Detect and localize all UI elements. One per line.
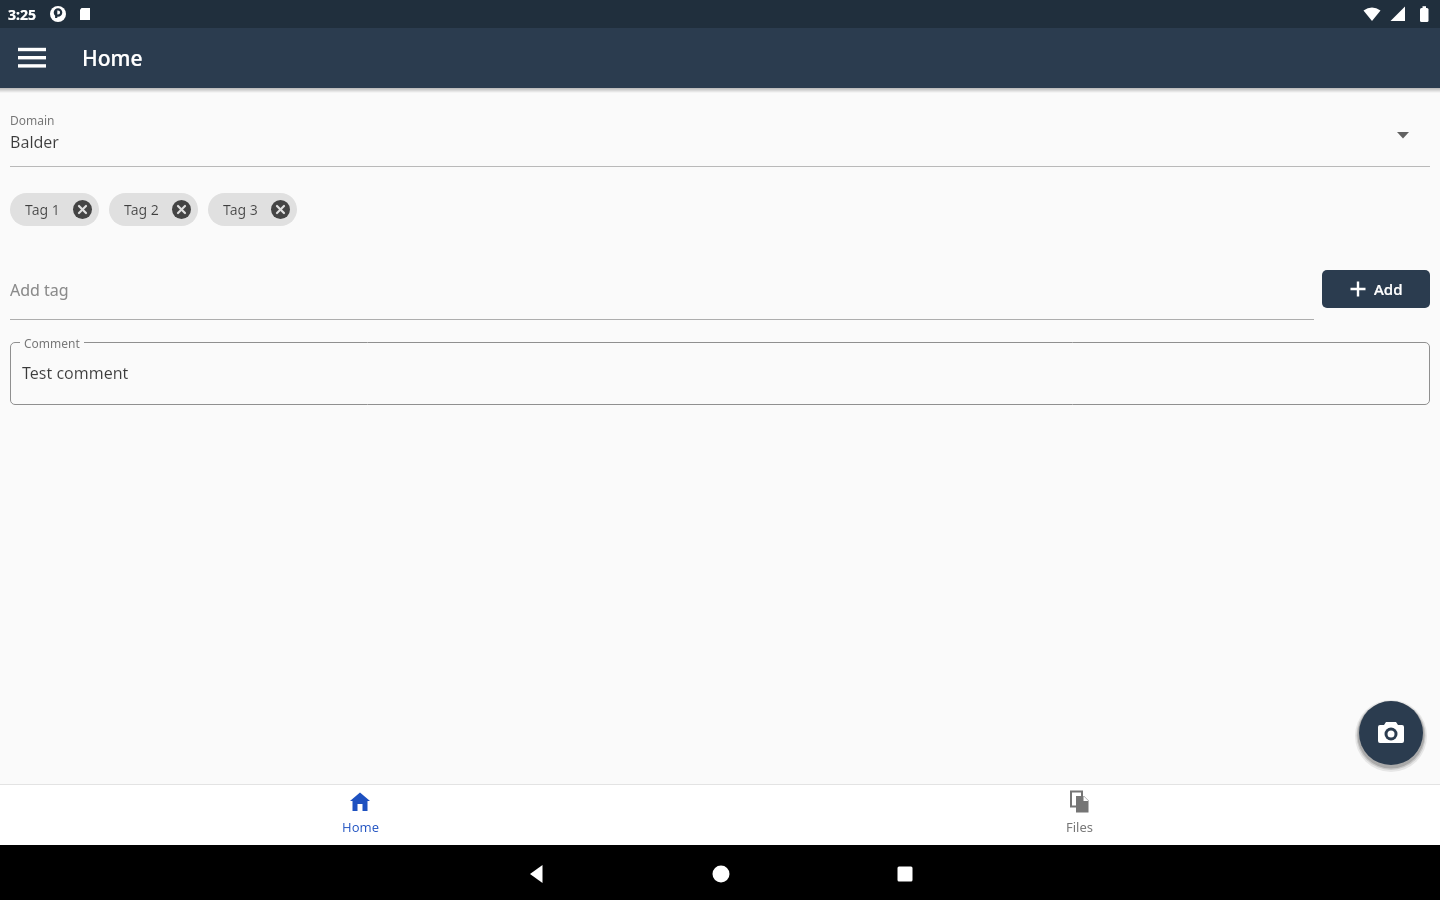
staticText: Domain [10, 112, 55, 128]
staticText: Tag 2 [124, 200, 159, 219]
button[interactable]: Tag 2 [109, 193, 198, 226]
staticText: Test comment [22, 362, 129, 384]
button[interactable]: Balder [0, 128, 1440, 168]
staticText: Add tag [10, 279, 69, 301]
staticText: Home [82, 44, 143, 73]
button[interactable]: Home [310, 790, 410, 844]
button[interactable] [1359, 701, 1423, 765]
staticText: Add [1374, 279, 1403, 299]
button[interactable]: Tag 3 [208, 193, 297, 226]
button[interactable] [16, 42, 48, 74]
button[interactable]: Tag 1 [10, 193, 99, 226]
staticText: Tag 1 [25, 200, 60, 219]
staticText: Home [342, 818, 379, 836]
staticText: Balder [10, 131, 59, 153]
button[interactable]: Files [1030, 790, 1130, 844]
staticText: Comment [24, 335, 80, 351]
staticText: Files [1066, 818, 1094, 836]
staticText: 3:25 [8, 5, 36, 24]
staticText: Tag 3 [223, 200, 258, 219]
button[interactable]: Add [1322, 270, 1430, 308]
